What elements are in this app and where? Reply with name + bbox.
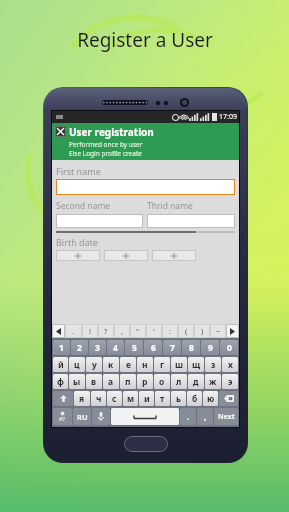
- button[interactable]: !: [82, 324, 98, 338]
- button[interactable]: .: [180, 408, 196, 425]
- button[interactable]: [152, 250, 196, 261]
- staticText: х: [228, 359, 233, 371]
- button[interactable]: [104, 250, 148, 261]
- button[interactable]: .: [65, 324, 82, 338]
- staticText: 6: [151, 342, 156, 354]
- button[interactable]: п: [120, 374, 136, 389]
- button[interactable]: ?: [98, 324, 114, 338]
- staticText: ,: [121, 326, 124, 336]
- button[interactable]: 5: [125, 340, 143, 355]
- button[interactable]: щ: [188, 357, 204, 372]
- button[interactable]: б: [187, 391, 202, 406]
- button[interactable]: г: [154, 357, 170, 372]
- button[interactable]: Home: [124, 436, 168, 452]
- staticText: 0: [227, 342, 232, 354]
- button[interactable]: э: [222, 374, 238, 389]
- button[interactable]: л: [171, 374, 187, 389]
- button[interactable]: у: [86, 357, 102, 372]
- staticText: Else Login profile create: [69, 149, 142, 158]
- button[interactable]: 8: [182, 340, 200, 355]
- button[interactable]: ю: [203, 391, 218, 406]
- staticText: !: [89, 326, 92, 336]
- button[interactable]: о: [154, 374, 170, 389]
- button[interactable]: е: [120, 357, 136, 372]
- button[interactable]: ц: [69, 357, 85, 372]
- button[interactable]: я: [74, 391, 90, 406]
- button[interactable]: с: [107, 391, 122, 406]
- button[interactable]: ): [194, 324, 210, 338]
- button[interactable]: :: [162, 324, 178, 338]
- staticText: т: [160, 393, 165, 405]
- button[interactable]: More symbols: [226, 324, 239, 338]
- button[interactable]: й: [53, 357, 68, 372]
- button[interactable]: ': [146, 324, 162, 338]
- staticText: ь: [176, 393, 182, 405]
- button[interactable]: ш: [171, 357, 187, 372]
- button[interactable]: в: [86, 374, 102, 389]
- button[interactable]: [147, 214, 235, 228]
- button[interactable]: Voice input: [92, 408, 110, 425]
- button[interactable]: ь: [171, 391, 186, 406]
- button[interactable]: [56, 214, 143, 228]
- button[interactable]: 4: [107, 340, 124, 355]
- button[interactable]: ж: [205, 374, 221, 389]
- staticText: о: [159, 376, 165, 388]
- button[interactable]: Next: [214, 408, 238, 425]
- staticText: г: [160, 359, 165, 371]
- staticText: RU: [77, 412, 88, 422]
- button[interactable]: [56, 250, 100, 261]
- button[interactable]: Space: [111, 408, 179, 425]
- staticText: ч: [96, 393, 102, 405]
- button[interactable]: Previous symbols: [52, 324, 65, 338]
- button[interactable]: Backspace: [219, 391, 238, 406]
- button[interactable]: з: [205, 357, 221, 372]
- button[interactable]: 1: [53, 340, 70, 355]
- staticText: в: [91, 376, 97, 388]
- staticText: .: [187, 411, 190, 422]
- button[interactable]: 7: [163, 340, 181, 355]
- staticText: Birth date: [56, 236, 98, 248]
- button[interactable]: [56, 179, 235, 195]
- staticText: е: [126, 359, 131, 371]
- button[interactable]: и: [139, 391, 154, 406]
- button[interactable]: ч: [91, 391, 106, 406]
- button[interactable]: д: [188, 374, 204, 389]
- staticText: у: [92, 359, 97, 371]
- button[interactable]: ы: [69, 374, 85, 389]
- button[interactable]: ": [130, 324, 146, 338]
- staticText: ": [136, 326, 140, 336]
- button[interactable]: а: [103, 374, 119, 389]
- button[interactable]: Shift: [53, 391, 73, 406]
- button[interactable]: 9: [201, 340, 219, 355]
- button[interactable]: ф: [53, 374, 68, 389]
- button[interactable]: 0: [220, 340, 238, 355]
- button[interactable]: ~: [210, 324, 226, 338]
- button[interactable]: 2: [71, 340, 88, 355]
- button[interactable]: 6: [144, 340, 162, 355]
- staticText: й: [58, 359, 64, 371]
- button[interactable]: 3: [89, 340, 106, 355]
- staticText: д: [193, 376, 199, 388]
- button[interactable]: н: [137, 357, 153, 372]
- button[interactable]: т: [155, 391, 170, 406]
- staticText: First name: [56, 165, 101, 177]
- staticText: 7: [170, 342, 175, 354]
- button[interactable]: м: [123, 391, 138, 406]
- staticText: Register a User: [77, 27, 213, 53]
- button[interactable]: (: [178, 324, 194, 338]
- button[interactable]: Close: [55, 126, 66, 137]
- staticText: м: [127, 393, 135, 405]
- staticText: 2: [77, 342, 82, 354]
- staticText: 9: [208, 342, 213, 354]
- button[interactable]: р: [137, 374, 153, 389]
- staticText: н: [142, 359, 148, 371]
- button[interactable]: ,: [197, 408, 213, 425]
- button[interactable]: RU: [73, 408, 91, 425]
- staticText: Second name: [56, 200, 111, 212]
- button[interactable]: х: [222, 357, 238, 372]
- button[interactable]: к: [103, 357, 119, 372]
- staticText: 17:09: [219, 112, 237, 122]
- staticText: 5: [132, 342, 137, 354]
- button[interactable]: ,: [114, 324, 130, 338]
- button[interactable]: Symbols: [53, 408, 72, 425]
